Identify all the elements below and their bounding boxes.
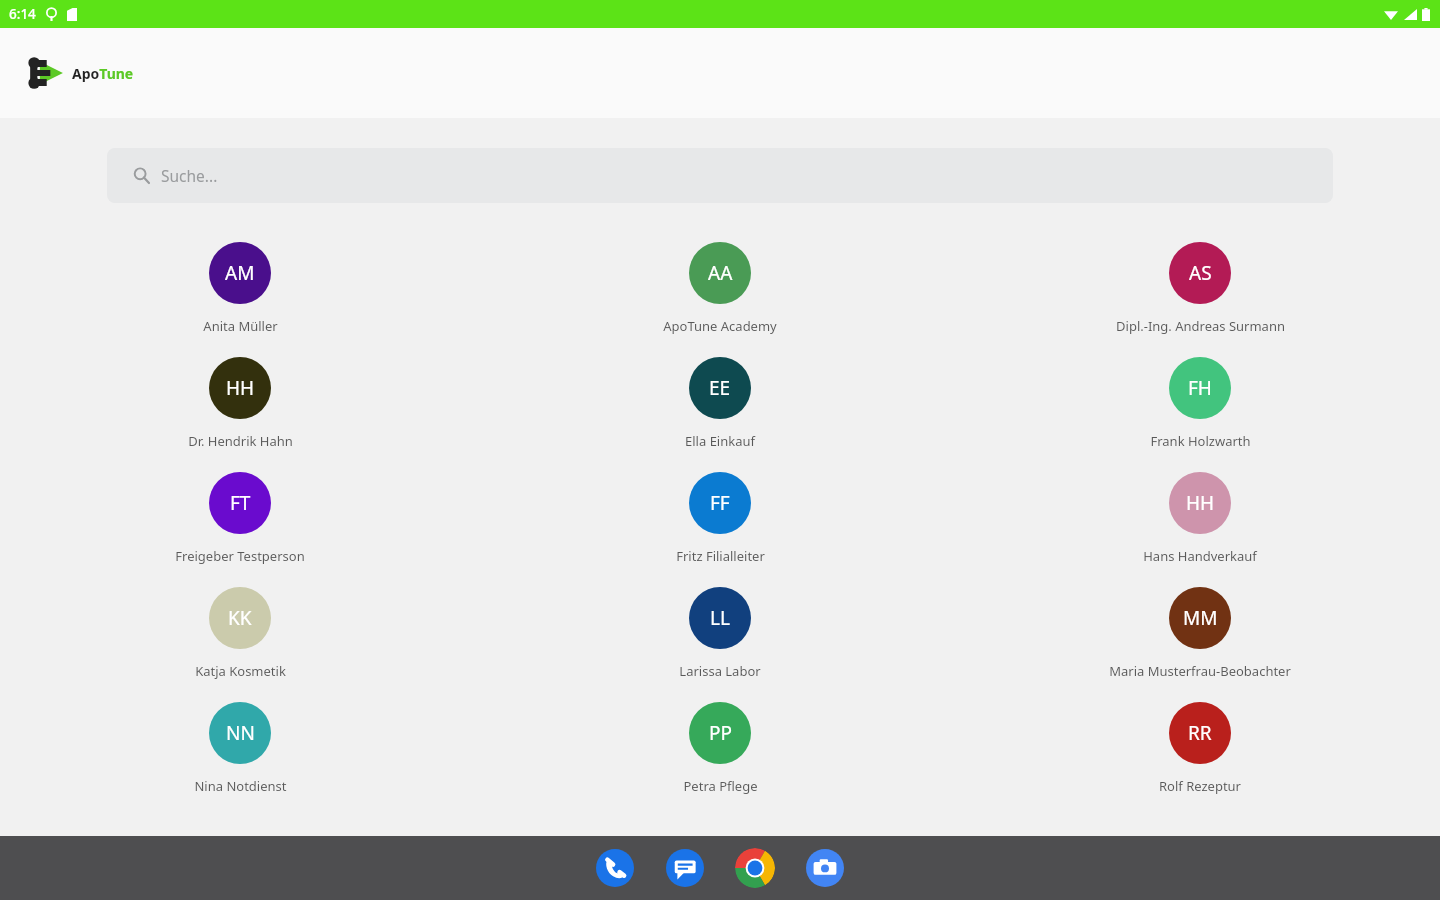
staticText: Larissa Labor	[679, 662, 761, 680]
staticText: AA	[708, 260, 733, 286]
button[interactable]: PP	[480, 700, 960, 797]
button[interactable]: FT	[0, 470, 480, 567]
button[interactable]: Chrome	[735, 848, 775, 888]
button[interactable]: EE	[480, 355, 960, 452]
staticText: HH	[226, 375, 255, 401]
button[interactable]: AS	[960, 240, 1440, 337]
staticText: FH	[1188, 375, 1212, 401]
staticText: Katja Kosmetik	[195, 662, 286, 680]
button[interactable]: Phone	[595, 848, 635, 888]
button[interactable]: MM	[960, 585, 1440, 682]
button[interactable]: HH	[0, 355, 480, 452]
staticText: 6:14	[9, 5, 36, 23]
staticText: PP	[709, 720, 732, 746]
button[interactable]: AM	[0, 240, 480, 337]
button[interactable]: Messages	[665, 848, 705, 888]
staticText: Nina Notdienst	[194, 777, 287, 795]
staticText: MM	[1183, 605, 1218, 631]
staticText: ApoTune	[72, 64, 134, 83]
staticText: Maria Musterfrau-Beobachter	[1109, 662, 1291, 680]
staticText: Dr. Hendrik Hahn	[188, 432, 293, 450]
staticText: Anita Müller	[203, 317, 278, 335]
staticText: FF	[710, 490, 730, 516]
staticText: Fritz Filialleiter	[676, 547, 765, 565]
staticText: NN	[226, 720, 255, 746]
button[interactable]: AA	[480, 240, 960, 337]
button[interactable]: NN	[0, 700, 480, 797]
staticText: HH	[1186, 490, 1215, 516]
staticText: KK	[228, 605, 252, 631]
button[interactable]: RR	[960, 700, 1440, 797]
button[interactable]: FH	[960, 355, 1440, 452]
staticText: Petra Pflege	[683, 777, 758, 795]
staticText: AM	[225, 260, 255, 286]
staticText: Hans Handverkauf	[1143, 547, 1257, 565]
staticText: LL	[710, 605, 730, 631]
staticText: ApoTune Academy	[663, 317, 777, 335]
button[interactable]: HH	[960, 470, 1440, 567]
staticText: FT	[230, 490, 251, 516]
button[interactable]: FF	[480, 470, 960, 567]
button[interactable]: LL	[480, 585, 960, 682]
staticText: Rolf Rezeptur	[1159, 777, 1241, 795]
staticText: Freigeber Testperson	[175, 547, 305, 565]
button[interactable]: KK	[0, 585, 480, 682]
staticText: RR	[1188, 720, 1212, 746]
staticText: EE	[709, 375, 731, 401]
staticText: Suche...	[161, 165, 218, 186]
staticText: Dipl.-Ing. Andreas Surmann	[1116, 317, 1285, 335]
staticText: Frank Holzwarth	[1150, 432, 1251, 450]
staticText: Ella Einkauf	[685, 432, 755, 450]
button[interactable]: Camera	[805, 848, 845, 888]
button[interactable]: ApoTune	[24, 51, 138, 95]
staticText: AS	[1189, 260, 1212, 286]
button[interactable]: Suche...	[107, 148, 1333, 203]
